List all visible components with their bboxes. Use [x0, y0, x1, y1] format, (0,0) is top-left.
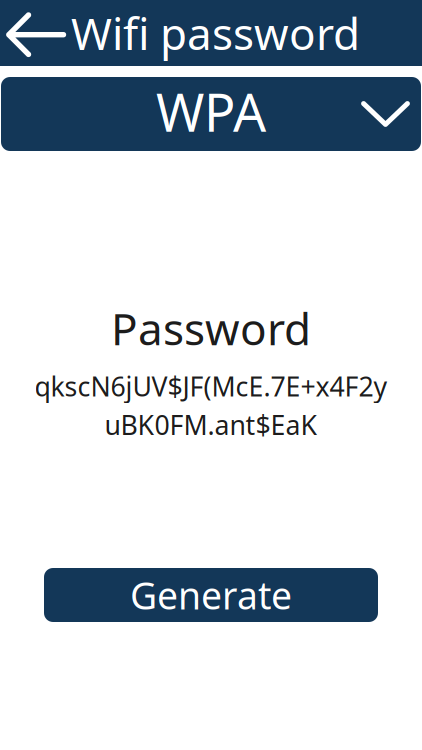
staticText: WPA [156, 77, 266, 146]
staticText: Wifi password [71, 4, 360, 62]
button[interactable]: WPA [1, 77, 421, 151]
button[interactable]: Generate [44, 568, 378, 622]
staticText: Generate [130, 570, 292, 620]
button[interactable]: Back [0, 0, 71, 66]
staticText: qkscN6jUV$JF(McE.7E+x4F2y [34, 368, 387, 404]
staticText: Password [111, 299, 311, 357]
staticText: uBK0FM.ant$EaK [104, 407, 317, 442]
